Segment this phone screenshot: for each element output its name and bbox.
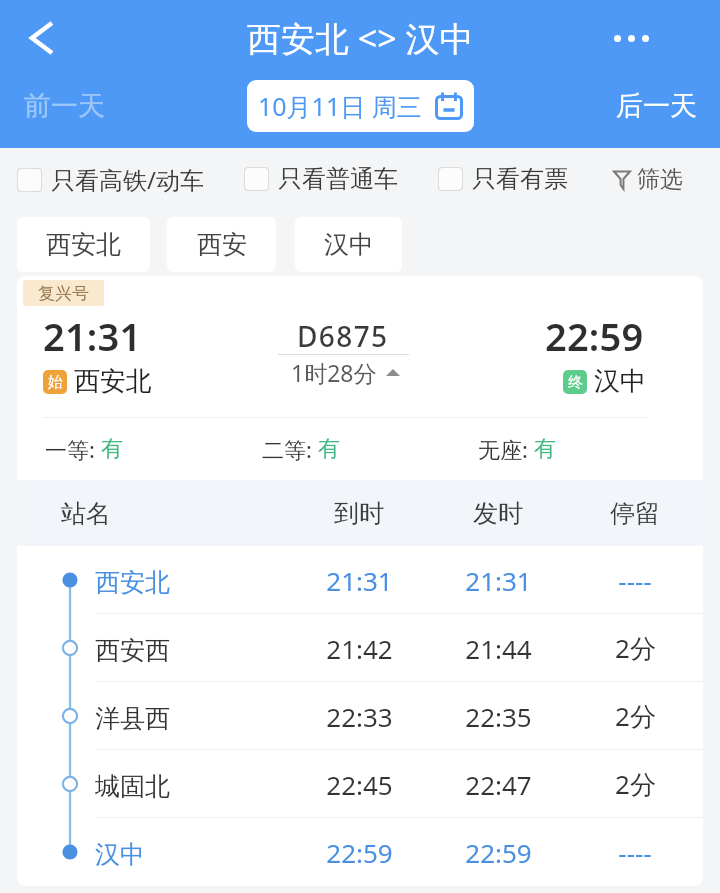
button[interactable]: 前一天 xyxy=(0,73,128,139)
button[interactable]: 西安 xyxy=(167,217,276,272)
button[interactable]: 一等: xyxy=(45,434,123,464)
button[interactable]: 后一天 xyxy=(592,73,720,139)
staticText: 发时 xyxy=(473,498,523,529)
staticText: 站名 xyxy=(61,498,111,529)
staticText: 始 xyxy=(48,373,63,392)
staticText: 一等: xyxy=(45,434,101,464)
staticText: 前一天 xyxy=(24,89,105,123)
staticText: 2分 xyxy=(615,698,656,734)
button[interactable]: 洋县西 xyxy=(17,682,703,750)
staticText: 西安北 <> 汉中 xyxy=(247,15,474,61)
staticText: 21:31 xyxy=(43,310,142,362)
staticText: 2分 xyxy=(615,766,656,802)
button[interactable]: Back xyxy=(0,0,84,76)
staticText: 22:59 xyxy=(465,835,532,870)
staticText: 西安北 xyxy=(74,365,152,398)
button[interactable]: 西安北 xyxy=(17,217,150,272)
staticText: 21:42 xyxy=(326,631,393,666)
staticText: 21:44 xyxy=(465,631,532,666)
staticText: 无座: xyxy=(478,434,534,464)
staticText: 汉中 xyxy=(95,839,145,870)
staticText: 21:31 xyxy=(465,563,532,598)
button[interactable]: 无座: xyxy=(478,434,556,464)
staticText: 筛选 xyxy=(637,165,683,194)
button[interactable]: 只看有票 xyxy=(438,164,568,194)
staticText: 22:47 xyxy=(465,767,532,802)
staticText: 西安 xyxy=(197,229,247,260)
staticText: 停留 xyxy=(610,498,660,529)
staticText: 22:35 xyxy=(465,699,532,734)
staticText: 西安西 xyxy=(95,635,170,666)
button[interactable]: 筛选 xyxy=(613,165,683,194)
staticText: 汉中 xyxy=(324,229,374,260)
staticText: 22:59 xyxy=(545,310,644,362)
staticText: ---- xyxy=(618,835,652,870)
staticText: 到时 xyxy=(334,498,384,529)
staticText: 只看有票 xyxy=(472,164,568,194)
staticText: 有 xyxy=(101,435,123,463)
staticText: 洋县西 xyxy=(95,703,170,734)
button[interactable]: 只看高铁/动车 xyxy=(17,163,204,196)
staticText: 西安北 xyxy=(95,567,170,598)
staticText: 只看高铁/动车 xyxy=(51,163,204,196)
staticText: 1时28分 xyxy=(291,357,377,388)
button[interactable]: 西安西 xyxy=(17,614,703,682)
button[interactable]: More options xyxy=(598,0,664,76)
button[interactable]: 只看普通车 xyxy=(244,164,398,194)
staticText: ---- xyxy=(618,563,652,598)
staticText: 2分 xyxy=(615,630,656,666)
staticText: 复兴号 xyxy=(38,283,89,304)
button[interactable]: 10月11日 周三 xyxy=(247,80,474,132)
staticText: 终 xyxy=(568,373,583,392)
staticText: 西安北 xyxy=(46,229,121,260)
staticText: D6875 xyxy=(297,317,389,355)
button[interactable]: 城固北 xyxy=(17,750,703,818)
staticText: 22:45 xyxy=(326,767,393,802)
button[interactable]: 汉中 xyxy=(295,217,402,272)
staticText: 有 xyxy=(534,435,556,463)
staticText: 城固北 xyxy=(95,771,170,802)
staticText: 22:33 xyxy=(326,699,393,734)
staticText: 有 xyxy=(318,435,340,463)
button[interactable]: 二等: xyxy=(262,434,340,464)
button[interactable]: 汉中 xyxy=(17,818,703,886)
staticText: 汉中 xyxy=(594,365,646,398)
button[interactable]: 西安北 xyxy=(17,546,703,614)
staticText: 只看普通车 xyxy=(278,164,398,194)
staticText: 二等: xyxy=(262,434,318,464)
staticText: 10月11日 周三 xyxy=(258,89,422,123)
staticText: 后一天 xyxy=(616,89,697,123)
staticText: 21:31 xyxy=(326,563,393,598)
staticText: 22:59 xyxy=(326,835,393,870)
